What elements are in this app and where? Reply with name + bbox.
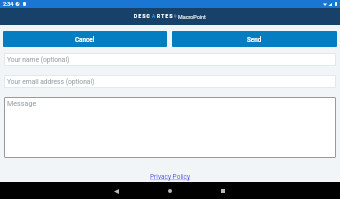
button[interactable]: Your email address (optional) — [4, 75, 336, 88]
button[interactable]: Recent apps — [216, 184, 230, 198]
staticText: A — [152, 14, 157, 20]
staticText: Your email address (optional) — [7, 78, 95, 86]
staticText: ® — [174, 15, 177, 19]
staticText: RTES — [157, 14, 174, 20]
button[interactable]: Back — [109, 184, 123, 198]
button[interactable]: Privacy Policy — [150, 173, 191, 181]
button[interactable]: Cancel — [3, 31, 167, 47]
staticText: Cancel — [75, 36, 95, 43]
button[interactable]: Home — [163, 184, 177, 198]
button[interactable]: Send — [172, 31, 337, 47]
button[interactable]: Your name (optional) — [4, 53, 336, 66]
staticText: DESC — [134, 14, 152, 20]
staticText: Your name (optional) — [7, 56, 70, 64]
staticText: Message — [7, 99, 37, 107]
staticText: MacroPoint — [178, 14, 206, 20]
staticText: 2:34 — [3, 1, 14, 7]
staticText: Send — [247, 36, 262, 43]
button[interactable]: Message — [4, 97, 336, 158]
